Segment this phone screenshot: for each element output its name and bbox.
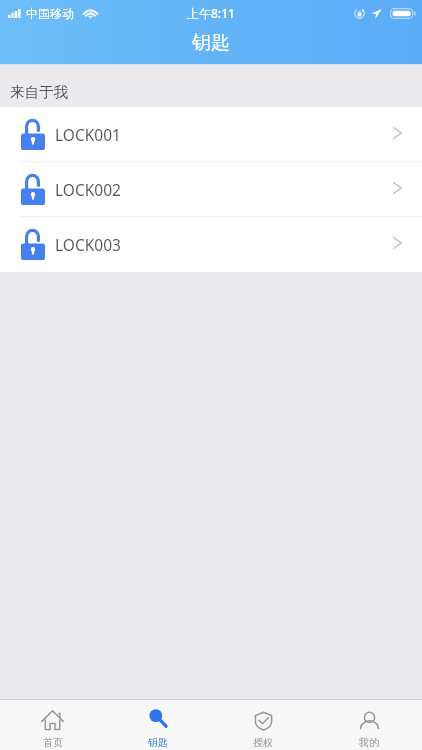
staticText: 授权	[253, 736, 273, 749]
button[interactable]: 我的	[316, 700, 422, 750]
staticText: 我的	[359, 736, 379, 749]
button[interactable]: LOCK001	[0, 107, 422, 162]
button[interactable]: LOCK002	[0, 162, 422, 217]
staticText: LOCK003	[55, 234, 121, 255]
staticText: 来自于我	[10, 83, 68, 101]
staticText: 钥匙	[192, 31, 230, 55]
other: Rotation lock	[354, 8, 365, 19]
button[interactable]: LOCK003	[0, 217, 422, 272]
other: Cellular signal	[8, 9, 21, 18]
button[interactable]: 钥匙	[105, 700, 210, 750]
staticText: 上午8:11	[187, 5, 235, 21]
staticText: 钥匙	[148, 736, 168, 749]
staticText: LOCK001	[55, 124, 121, 145]
other: Wi-Fi	[84, 9, 97, 19]
button[interactable]: 授权	[210, 700, 316, 750]
staticText: 中国移动	[26, 6, 74, 21]
staticText: 首页	[43, 736, 63, 749]
other: Battery	[390, 8, 416, 19]
button[interactable]: 首页	[0, 700, 105, 750]
other: Location	[372, 9, 382, 19]
staticText: LOCK002	[55, 179, 121, 200]
